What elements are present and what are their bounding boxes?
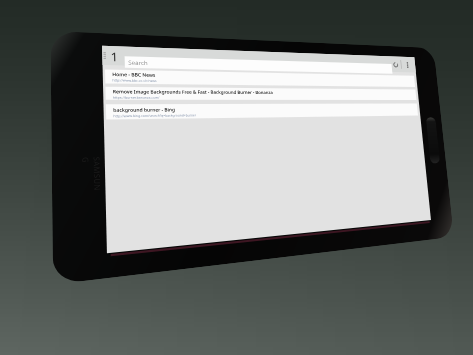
staticText: http://www.bing.com/search?q=background+… [113,113,197,118]
button[interactable]: background burner - Bing [106,103,418,120]
button[interactable]: Tabs [108,46,121,66]
staticText: Remove Image Backgrounds Free & Fast - B… [113,88,274,95]
staticText: SAMSUNG [80,156,103,197]
button[interactable]: Search [125,56,392,74]
staticText: 1 [110,48,119,64]
staticText: http://www.bbc.co.uk/news [112,78,157,83]
button[interactable]: Reload [391,56,401,72]
staticText: https://burner.bonanza.com/ [113,95,160,100]
button[interactable]: Remove Image Backgrounds Free & Fast - B… [105,87,416,100]
staticText: Search [128,58,149,66]
staticText: background burner - Bing [113,106,176,113]
button[interactable]: More options [402,57,412,72]
button[interactable]: Home [426,117,440,164]
button[interactable]: Home - BBC News [105,69,415,87]
staticText: Home - BBC News [112,71,156,78]
